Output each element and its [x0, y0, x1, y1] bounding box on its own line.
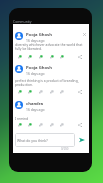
button[interactable]: Reaction: [17, 54, 23, 60]
button[interactable]: Reaction: [38, 122, 44, 128]
button[interactable]: Share: [77, 89, 83, 95]
button[interactable]: Dismiss: [82, 32, 87, 37]
button[interactable]: Reaction: [27, 54, 33, 60]
button[interactable]: chandra: [13, 101, 89, 111]
staticText: diversity whichever advocate the world t…: [15, 42, 87, 46]
button[interactable]: Reaction: [17, 122, 23, 128]
staticText: Pooja Ghosh: [26, 32, 52, 38]
staticText: 16 days ago: [26, 107, 45, 111]
staticText: fully be liberated.: [15, 46, 42, 50]
button[interactable]: Share: [77, 54, 83, 60]
staticText: What do you think?: [17, 138, 48, 143]
button[interactable]: Pooja Ghosh: [13, 65, 89, 75]
staticText: I remind: [15, 116, 29, 120]
staticText: 0/250: [61, 147, 69, 151]
button[interactable]: Reaction: [49, 54, 55, 60]
button[interactable]: Reaction: [49, 89, 55, 95]
button[interactable]: Reaction: [49, 122, 55, 128]
button[interactable]: What do you think?: [15, 133, 75, 147]
button[interactable]: Reaction: [27, 122, 33, 128]
button[interactable]: Reaction: [59, 122, 65, 128]
staticText: chandra: [26, 101, 44, 107]
staticText: Pooja Ghosh: [26, 65, 52, 71]
staticText: Community: [13, 19, 32, 24]
button[interactable]: Reaction: [59, 54, 65, 60]
staticText: perfect thinking is a product of brandin…: [15, 78, 87, 82]
staticText: production.: [15, 82, 33, 86]
button[interactable]: Share: [77, 122, 83, 128]
button[interactable]: Reaction: [17, 89, 23, 95]
staticText: 16 days ago: [26, 38, 45, 42]
button[interactable]: Pooja Ghosh: [13, 32, 89, 42]
button[interactable]: Reaction: [38, 89, 44, 95]
button[interactable]: Reaction: [27, 89, 33, 95]
button[interactable]: Reaction: [59, 89, 65, 95]
button[interactable]: Reaction: [38, 54, 44, 60]
staticText: 16 days ago: [26, 71, 45, 75]
button[interactable]: Send: [77, 135, 86, 144]
